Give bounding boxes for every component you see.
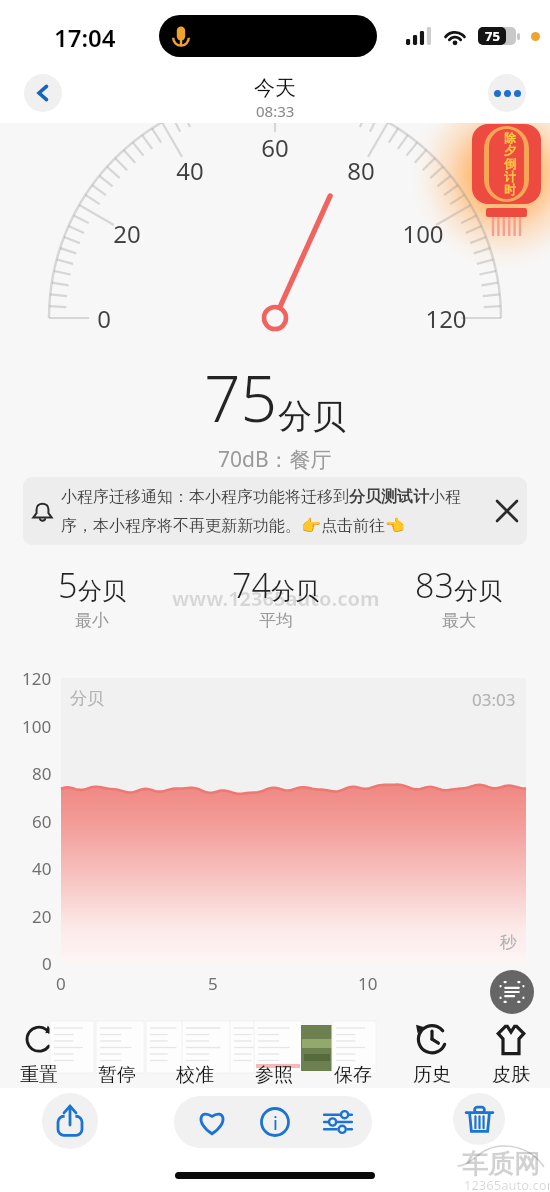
staticText: 83 — [415, 562, 454, 608]
staticText: 5 — [208, 972, 218, 995]
staticText: 100 — [22, 715, 52, 738]
staticText: 参照 — [255, 1063, 293, 1087]
button[interactable]: 皮肤 — [471, 1062, 550, 1088]
button[interactable]: More options — [488, 74, 526, 112]
staticText: 小程序迁移通知：本小程序功能将迁移到分贝测试计小程序，本小程序将不再更新新功能。… — [61, 487, 487, 536]
staticText: www.12365auto.com — [172, 585, 380, 612]
staticText: 除 — [504, 130, 516, 144]
staticText: 12365auto.com — [464, 1176, 550, 1192]
staticText: 60 — [32, 810, 52, 833]
staticText: 暂停 — [98, 1063, 136, 1087]
button[interactable]: Back — [24, 74, 62, 112]
button[interactable]: 校准 — [156, 1062, 234, 1088]
staticText: 03:03 — [472, 688, 516, 711]
staticText: 倒 — [504, 156, 516, 170]
button[interactable]: 5 — [0, 562, 184, 631]
button[interactable]: 74 — [184, 562, 367, 631]
staticText: 80 — [32, 762, 52, 785]
staticText: 分贝 — [70, 688, 104, 709]
staticText: 分贝 — [271, 576, 319, 606]
button[interactable]: 重置 — [0, 1062, 78, 1088]
button[interactable]: Live Text — [490, 970, 534, 1014]
staticText: 分贝 — [454, 576, 502, 606]
staticText: 40 — [32, 857, 52, 880]
staticText: 校准 — [176, 1063, 214, 1087]
staticText: 0 — [97, 302, 111, 335]
button[interactable]: Close — [487, 477, 527, 545]
staticText: 120 — [425, 302, 467, 335]
staticText: 17:04 — [54, 21, 116, 54]
button[interactable]: Delete — [453, 1093, 505, 1145]
staticText: 车质网 — [462, 1148, 540, 1181]
staticText: 80 — [347, 154, 375, 187]
button[interactable]: Info — [246, 1096, 304, 1148]
staticText: 计 — [504, 169, 516, 183]
button[interactable]: 历史 — [392, 1062, 471, 1088]
staticText: 0 — [56, 972, 66, 995]
staticText: 08:33 — [256, 101, 295, 121]
staticText: 0 — [42, 952, 52, 975]
staticText: 最小 — [75, 610, 109, 631]
staticText: 10 — [358, 972, 378, 995]
staticText: 40 — [176, 154, 204, 187]
staticText: 60 — [261, 131, 289, 164]
staticText: 20 — [32, 905, 52, 928]
staticText: 历史 — [413, 1063, 451, 1087]
button[interactable]: 83 — [367, 562, 550, 631]
staticText: 时 — [504, 182, 516, 196]
staticText: 最大 — [442, 610, 476, 631]
staticText: i — [273, 1111, 278, 1136]
button[interactable]: Favorite — [183, 1096, 241, 1148]
staticText: 保存 — [334, 1063, 372, 1087]
button[interactable]: 小程序迁移通知：本小程序功能将迁移到分贝测试计小程序，本小程序将不再更新新功能。… — [23, 477, 527, 545]
staticText: 20 — [113, 217, 141, 250]
staticText: 100 — [402, 217, 444, 250]
staticText: 皮肤 — [492, 1063, 530, 1087]
button[interactable]: Settings — [309, 1096, 367, 1148]
staticText: 秒 — [500, 932, 517, 953]
button[interactable]: 暂停 — [78, 1062, 156, 1088]
button[interactable]: 参照 — [234, 1062, 313, 1088]
staticText: 75 — [485, 27, 500, 45]
staticText: 夕 — [504, 143, 516, 157]
staticText: 70dB：餐厅 — [218, 445, 332, 474]
staticText: 分贝 — [78, 576, 126, 606]
staticText: 74 — [232, 562, 271, 608]
staticText: 今天 — [254, 75, 296, 101]
button[interactable]: Share — [42, 1093, 98, 1149]
staticText: 平均 — [259, 610, 293, 631]
staticText: 75 — [204, 354, 278, 441]
staticText: 120 — [22, 667, 52, 690]
staticText: 重置 — [20, 1063, 58, 1087]
button[interactable]: 保存 — [313, 1062, 392, 1088]
staticText: 分贝 — [278, 395, 346, 438]
staticText: 5 — [58, 562, 78, 608]
